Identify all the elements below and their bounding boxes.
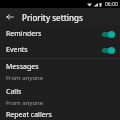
button[interactable]: Messages [0, 59, 120, 84]
button[interactable]: Back [3, 10, 17, 24]
staticText: Reminders [6, 29, 101, 39]
button[interactable]: Reminders [0, 26, 120, 42]
staticText: From anyone [6, 74, 44, 82]
button[interactable]: Toggle [101, 46, 115, 54]
staticText: Priority settings [22, 12, 83, 23]
staticText: Repeat callers [6, 110, 52, 120]
button[interactable]: Calls [0, 84, 120, 109]
staticText: Calls [6, 87, 22, 97]
button[interactable]: Toggle [101, 30, 115, 38]
staticText: Events [6, 45, 101, 55]
staticText: From anyone [6, 99, 44, 107]
button[interactable]: Repeat callers [0, 109, 120, 120]
staticText: 06:00 [105, 1, 118, 8]
button[interactable]: Events [0, 42, 120, 58]
staticText: Messages [6, 62, 39, 72]
